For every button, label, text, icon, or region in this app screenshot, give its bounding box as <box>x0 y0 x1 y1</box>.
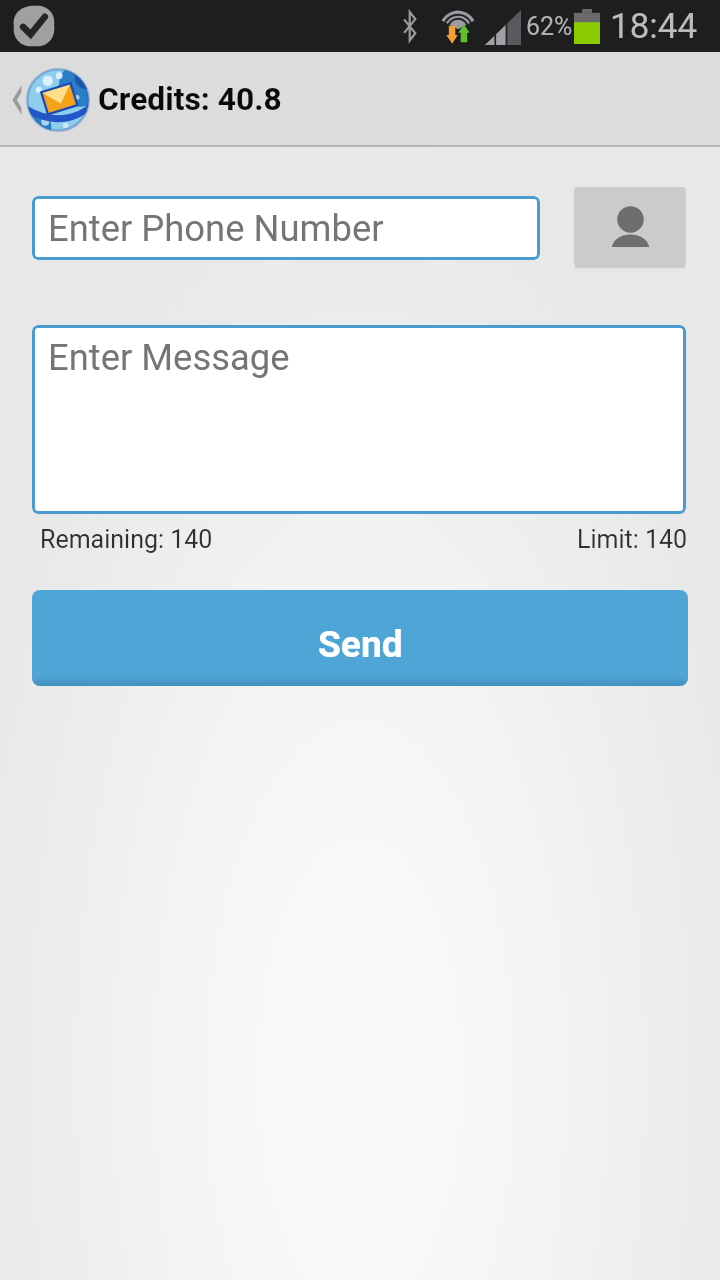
button[interactable]: Navigate up <box>10 52 282 147</box>
button[interactable]: Enter Phone Number <box>32 196 540 260</box>
staticText: 18:44 <box>610 6 698 47</box>
staticText: Send <box>318 622 403 666</box>
staticText: Enter Phone Number <box>48 207 384 250</box>
staticText: 62% <box>526 12 573 41</box>
button[interactable]: Pick contact <box>574 187 686 266</box>
button[interactable]: Send <box>32 590 688 686</box>
button[interactable]: Enter Message <box>32 325 686 514</box>
staticText: Enter Message <box>48 336 290 379</box>
staticText: Credits: 40.8 <box>98 80 282 117</box>
staticText: Limit: 140 <box>577 525 688 554</box>
staticText: Remaining: 140 <box>40 525 213 554</box>
